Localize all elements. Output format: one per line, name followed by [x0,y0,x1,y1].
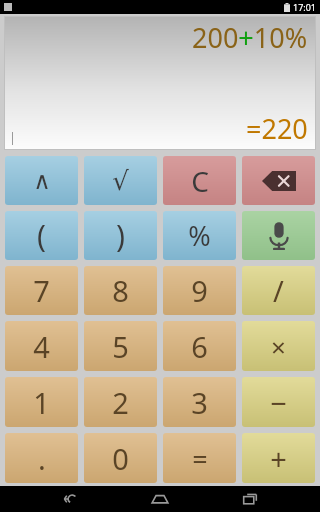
button[interactable]: 6 [163,321,236,371]
staticText: . [38,439,46,478]
button[interactable]: Backspace [242,156,315,205]
button[interactable]: 9 [163,266,236,315]
button[interactable]: 4 [5,321,78,371]
staticText: 7 [33,271,50,310]
staticText: 8 [112,271,129,310]
button[interactable]: Voice input [242,211,315,260]
staticText: ∧ [33,167,51,195]
button[interactable]: − [242,377,315,427]
button[interactable]: × [242,321,315,371]
button[interactable]: = [163,433,236,483]
button[interactable]: 0 [84,433,157,483]
staticText: = [192,440,208,477]
button[interactable]: / [242,266,315,315]
staticText: 5 [112,327,129,366]
button[interactable]: Recent apps [230,486,270,512]
staticText: × [271,329,286,364]
button[interactable]: 3 [163,377,236,427]
button[interactable]: C [163,156,236,205]
staticText: √ [112,166,129,196]
button[interactable]: ( [5,211,78,260]
staticText: 1 [33,383,50,422]
staticText: ( [37,215,46,256]
staticText: % [188,217,211,254]
staticText: / [273,271,284,310]
button[interactable]: 1 [5,377,78,427]
button[interactable]: ∧ [5,156,78,205]
staticText: ) [116,215,125,256]
button[interactable]: √ [84,156,157,205]
staticText: 9 [191,271,208,310]
button[interactable]: . [5,433,78,483]
staticText: − [270,383,287,422]
button[interactable]: 5 [84,321,157,371]
staticText: =220 [246,110,308,147]
button[interactable]: 200+10% [5,17,315,149]
button[interactable]: ) [84,211,157,260]
button[interactable]: + [242,433,315,483]
button[interactable]: 8 [84,266,157,315]
staticText: 2 [112,383,129,422]
button[interactable]: 7 [5,266,78,315]
staticText: 6 [191,327,208,366]
staticText: 17:01 [293,1,317,13]
staticText: 4 [33,327,50,366]
staticText: 3 [191,383,208,422]
button[interactable]: % [163,211,236,260]
staticText: 200+10% [192,19,308,56]
staticText: C [191,162,209,200]
staticText: + [270,439,287,478]
button[interactable]: Back [50,486,90,512]
staticText: 0 [112,439,129,478]
button[interactable]: 2 [84,377,157,427]
button[interactable]: Home [140,486,180,512]
